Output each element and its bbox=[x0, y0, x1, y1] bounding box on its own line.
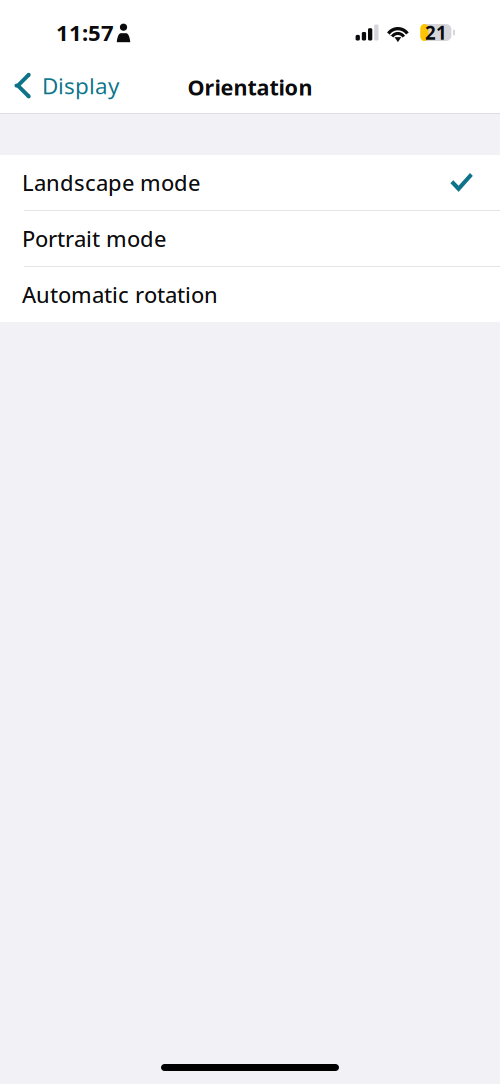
staticText: 21 bbox=[425, 20, 447, 45]
button[interactable]: Automatic rotation bbox=[0, 267, 500, 322]
button[interactable]: Portrait mode bbox=[0, 211, 500, 266]
staticText: Landscape mode bbox=[22, 168, 200, 197]
staticText: Orientation bbox=[187, 72, 312, 102]
button[interactable]: Landscape mode bbox=[0, 155, 500, 210]
button[interactable]: Display bbox=[0, 61, 131, 110]
staticText: Portrait mode bbox=[22, 224, 166, 253]
staticText: 11:57 bbox=[56, 17, 114, 47]
staticText: Display bbox=[42, 70, 119, 101]
staticText: Automatic rotation bbox=[22, 280, 218, 309]
